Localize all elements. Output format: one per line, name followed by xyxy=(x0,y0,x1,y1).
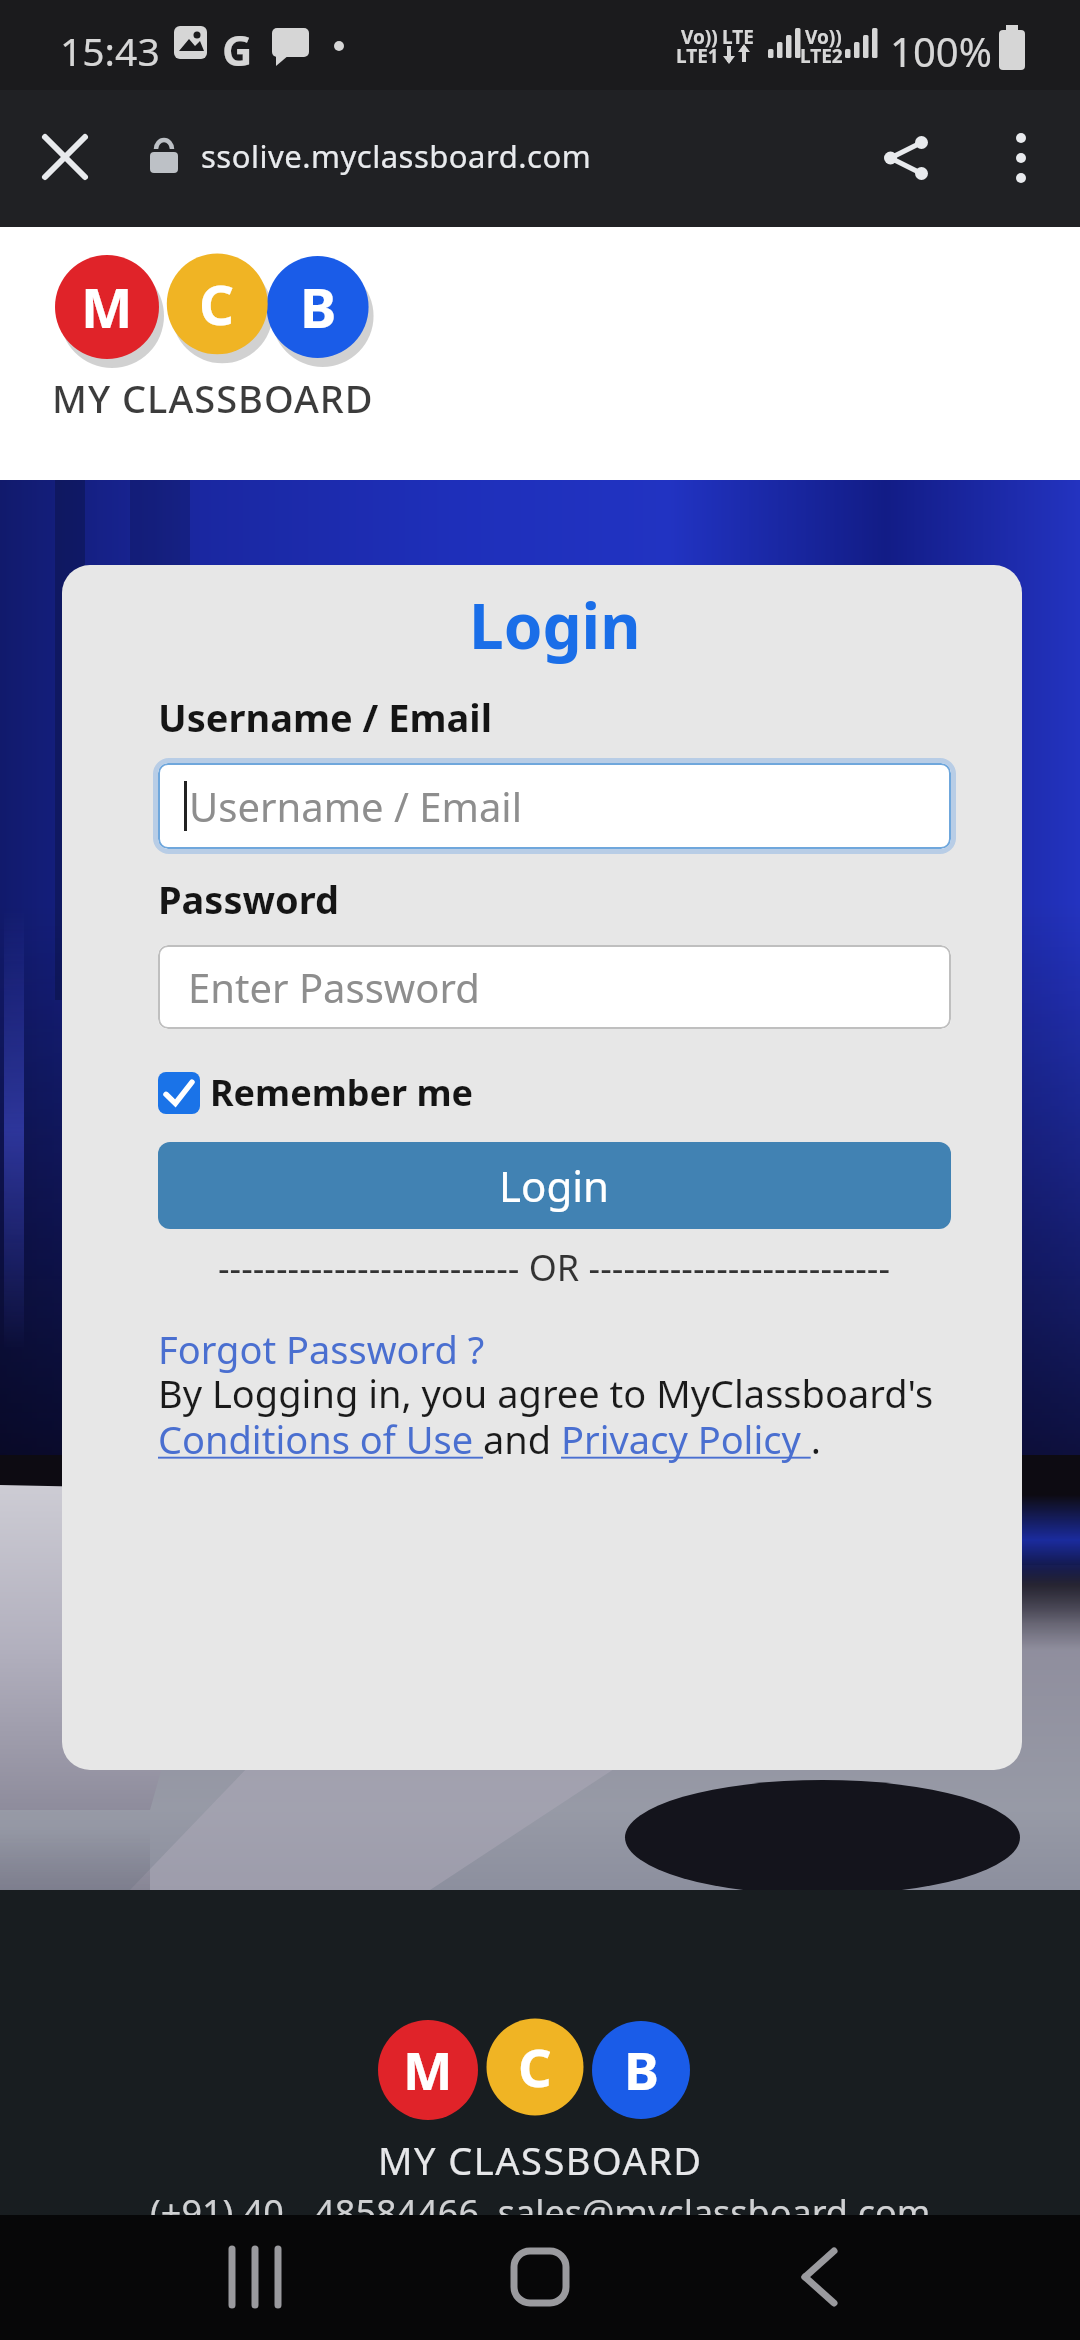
button[interactable] xyxy=(770,2237,870,2317)
button[interactable]: Username / Email xyxy=(158,763,951,849)
button[interactable]: Forgot Password ? xyxy=(158,1323,485,1375)
staticText: Password xyxy=(158,873,340,925)
staticText: Login xyxy=(499,1157,610,1214)
staticText: LTE2 xyxy=(800,43,843,69)
staticText: M xyxy=(403,2034,453,2106)
staticText: LTE xyxy=(722,24,754,50)
staticText: MY CLASSBOARD xyxy=(52,372,374,424)
button[interactable] xyxy=(205,2237,305,2317)
staticText: G xyxy=(222,21,253,78)
button[interactable] xyxy=(490,2237,590,2317)
button[interactable] xyxy=(985,122,1057,194)
button[interactable]: ssolive.myclassboard.com xyxy=(201,135,592,177)
button[interactable]: By Logging in, you agree to MyClassboard… xyxy=(158,1367,951,1465)
button[interactable]: Enter Password xyxy=(158,945,951,1029)
button[interactable]: Remember me xyxy=(158,1068,474,1117)
staticText: Username / Email xyxy=(158,691,492,743)
staticText: Vo)) xyxy=(681,24,718,50)
staticText: Vo)) xyxy=(805,24,842,50)
staticText: Enter Password xyxy=(188,960,480,1014)
button[interactable] xyxy=(870,122,942,194)
staticText: MY CLASSBOARD xyxy=(378,2134,703,2186)
staticText: Remember me xyxy=(210,1068,474,1117)
button[interactable]: Login xyxy=(158,1142,951,1229)
staticText: C xyxy=(199,267,235,341)
staticText: 100% xyxy=(890,24,992,78)
staticText: -------------------------- OR ----------… xyxy=(218,1243,891,1292)
staticText: Username / Email xyxy=(189,779,522,833)
staticText: M xyxy=(81,270,133,344)
staticText: C xyxy=(518,2031,552,2103)
staticText: LTE1 xyxy=(676,43,719,69)
button[interactable] xyxy=(30,122,100,192)
staticText: B xyxy=(300,270,337,344)
staticText: Login xyxy=(469,583,641,667)
staticText: 15:43 xyxy=(60,24,160,77)
staticText: (+91) 40 - 48584466 sales@myclassboard.c… xyxy=(150,2188,931,2215)
staticText: B xyxy=(624,2034,659,2106)
